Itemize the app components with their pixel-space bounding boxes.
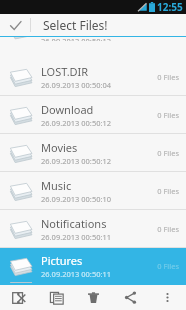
staticText: Movies	[41, 140, 78, 155]
button[interactable]: Confirm selection	[0, 14, 30, 36]
staticText: 26.09.2013 00:50:12	[41, 118, 112, 128]
staticText: 12:55	[157, 0, 183, 14]
staticText: 26.09.2013 00:50:04	[41, 80, 112, 90]
button[interactable]: Cut	[0, 285, 38, 310]
staticText: 26.09.2013 00:50:12	[41, 156, 112, 166]
staticText: Pictures	[41, 253, 83, 268]
button[interactable]: Share	[112, 285, 149, 310]
button[interactable]: Copy	[38, 285, 75, 310]
button[interactable]: LOST.DIR	[0, 58, 186, 96]
button[interactable]: Music	[0, 172, 186, 210]
staticText: 26.09.2013 00:50:12	[41, 37, 112, 41]
staticText: Music	[41, 178, 72, 193]
staticText: Notifications	[41, 216, 107, 231]
staticText: 26.09.2013 00:50:11	[41, 232, 112, 242]
staticText: 0 Files	[157, 110, 179, 120]
button[interactable]: Notifications	[0, 210, 186, 248]
staticText: 26.09.2013 00:50:10	[41, 194, 112, 204]
button[interactable]: Movies	[0, 134, 186, 172]
staticText: 26.09.2013 00:50:11	[41, 269, 112, 279]
staticText: 0 Files	[157, 261, 179, 271]
staticText: LOST.DIR	[41, 64, 89, 79]
staticText: 0 Files	[157, 186, 179, 196]
staticText: 0 Files	[157, 148, 179, 158]
button[interactable]: Download	[0, 96, 186, 134]
staticText: Select Files!	[43, 17, 108, 33]
staticText: 0 Files	[157, 224, 179, 234]
button[interactable]: Delete	[75, 285, 112, 310]
button[interactable]: Pictures	[0, 248, 186, 283]
button[interactable]: More options	[149, 285, 186, 310]
button[interactable]: DCIM	[0, 37, 186, 41]
staticText: Download	[41, 102, 94, 117]
staticText: 0 Files	[157, 72, 179, 82]
